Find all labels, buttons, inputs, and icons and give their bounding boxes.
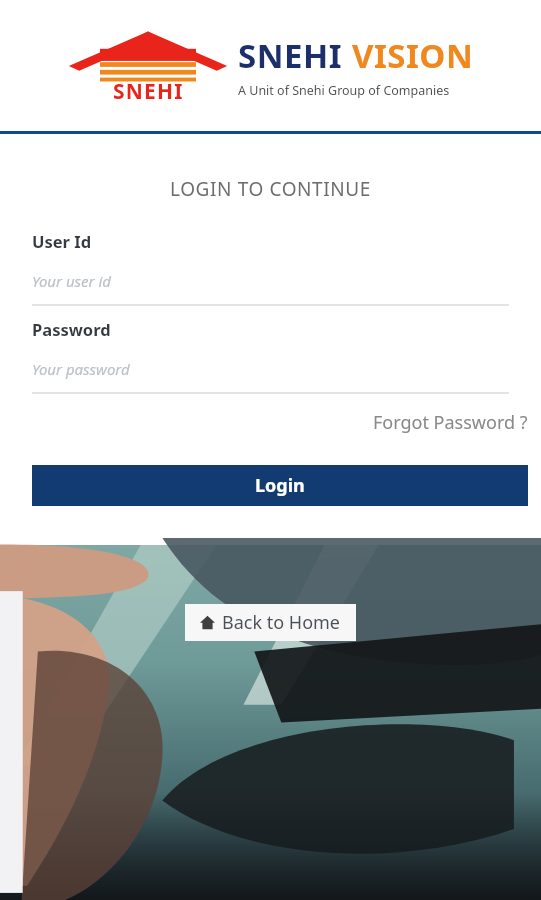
staticText: Login (255, 473, 305, 498)
staticText: A Unit of Snehi Group of Companies (238, 82, 450, 99)
staticText: SNEHI (238, 33, 343, 78)
button[interactable]: Your password (32, 359, 509, 379)
staticText: Your user id (32, 271, 111, 291)
staticText: Forgot Password ? (373, 410, 528, 435)
staticText: Your password (32, 359, 130, 379)
button[interactable]: Login (32, 465, 528, 506)
staticText: Back to Home (222, 610, 341, 635)
staticText: SNEHI (113, 77, 184, 106)
staticText: LOGIN TO CONTINUE (0, 176, 541, 202)
staticText: VISION (352, 33, 474, 78)
button[interactable]: Forgot Password ? (373, 408, 541, 437)
staticText: User Id (32, 230, 92, 252)
button[interactable]: Back to Home (185, 604, 356, 641)
button[interactable]: Your user id (32, 271, 509, 291)
staticText: Password (32, 318, 111, 340)
